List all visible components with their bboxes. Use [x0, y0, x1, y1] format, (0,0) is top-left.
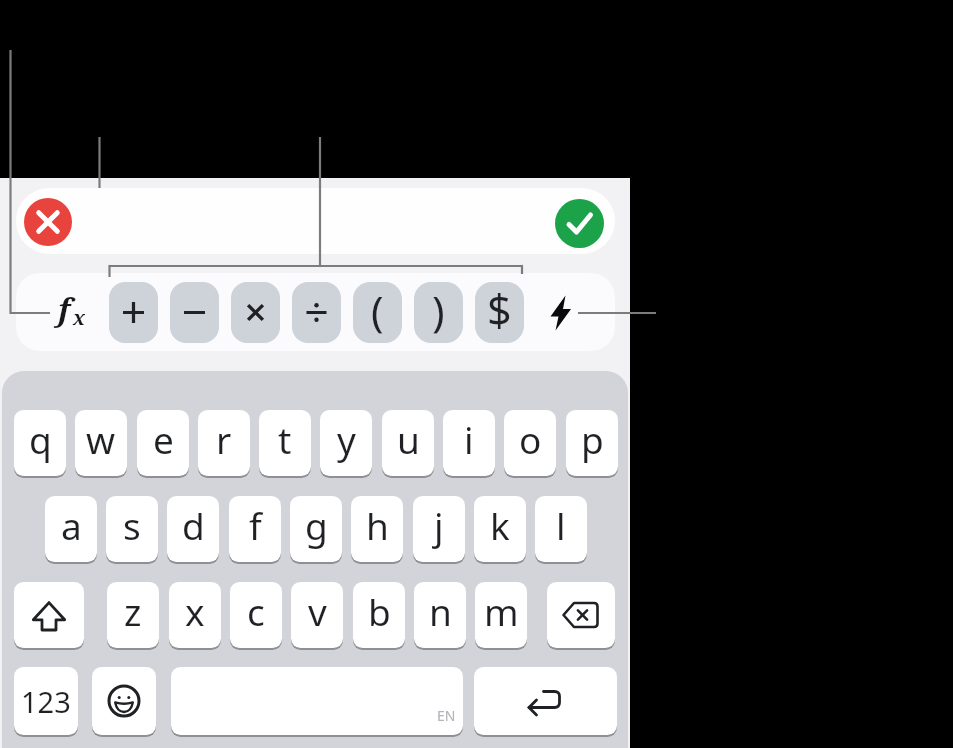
staticText: $ — [487, 282, 512, 339]
button[interactable]: f — [50, 285, 94, 337]
button[interactable]: n — [414, 582, 466, 648]
button[interactable]: p — [566, 410, 618, 476]
staticText: 123 — [21, 682, 71, 721]
staticText: e — [153, 414, 174, 464]
button[interactable] — [24, 198, 72, 246]
button[interactable]: EN — [171, 667, 463, 735]
staticText: q — [29, 414, 52, 464]
staticText: ( — [371, 282, 384, 339]
staticText: v — [308, 586, 327, 636]
staticText: u — [397, 414, 420, 464]
staticText: c — [247, 586, 265, 636]
staticText: f — [58, 288, 71, 330]
staticText: f — [249, 500, 262, 550]
staticText: x — [185, 586, 205, 636]
button[interactable]: i — [443, 410, 495, 476]
button[interactable]: q — [14, 410, 66, 476]
staticText: t — [278, 414, 292, 464]
button[interactable] — [555, 199, 604, 248]
button[interactable]: b — [353, 582, 405, 648]
button[interactable]: d — [167, 496, 219, 562]
button[interactable]: v — [291, 582, 343, 648]
staticText: h — [366, 500, 389, 550]
button[interactable]: 123 — [14, 667, 78, 735]
staticText: x — [73, 304, 86, 331]
button[interactable] — [547, 582, 615, 648]
button[interactable]: w — [75, 410, 127, 476]
staticText: w — [86, 414, 116, 464]
button[interactable]: k — [474, 496, 526, 562]
button[interactable] — [14, 582, 84, 648]
button[interactable]: g — [290, 496, 342, 562]
staticText: l — [556, 500, 566, 550]
button[interactable]: z — [107, 582, 159, 648]
button[interactable]: u — [382, 410, 434, 476]
button[interactable]: r — [198, 410, 250, 476]
staticText: j — [434, 500, 444, 550]
button[interactable]: e — [137, 410, 189, 476]
button[interactable] — [541, 293, 581, 333]
staticText: k — [490, 500, 510, 550]
staticText: b — [368, 586, 391, 636]
staticText: z — [124, 586, 142, 636]
button[interactable]: t — [259, 410, 311, 476]
button[interactable]: o — [504, 410, 556, 476]
staticText: n — [429, 586, 452, 636]
button[interactable] — [92, 667, 156, 735]
button[interactable]: l — [535, 496, 587, 562]
button[interactable]: j — [413, 496, 465, 562]
staticText: d — [182, 500, 205, 550]
button[interactable]: x — [169, 582, 221, 648]
button[interactable]: $ — [475, 282, 524, 343]
staticText: ) — [432, 282, 445, 339]
button[interactable]: c — [230, 582, 282, 648]
staticText: i — [464, 414, 474, 464]
staticText: s — [123, 500, 141, 550]
button[interactable]: m — [475, 582, 527, 648]
staticText: o — [519, 414, 542, 464]
button[interactable] — [292, 282, 341, 343]
button[interactable]: a — [45, 496, 97, 562]
button[interactable]: h — [351, 496, 403, 562]
staticText: a — [61, 500, 82, 550]
button[interactable] — [170, 282, 219, 343]
button[interactable]: s — [106, 496, 158, 562]
button[interactable] — [231, 282, 280, 343]
button[interactable]: ( — [353, 282, 402, 343]
staticText: EN — [437, 706, 456, 725]
button[interactable]: f — [229, 496, 281, 562]
button[interactable] — [474, 667, 617, 735]
staticText: r — [216, 414, 232, 464]
staticText: g — [305, 500, 328, 550]
staticText: y — [337, 414, 356, 464]
button[interactable]: ) — [414, 282, 463, 343]
button[interactable] — [109, 282, 158, 343]
staticText: m — [484, 586, 519, 636]
staticText: p — [581, 414, 604, 464]
button[interactable]: y — [320, 410, 372, 476]
